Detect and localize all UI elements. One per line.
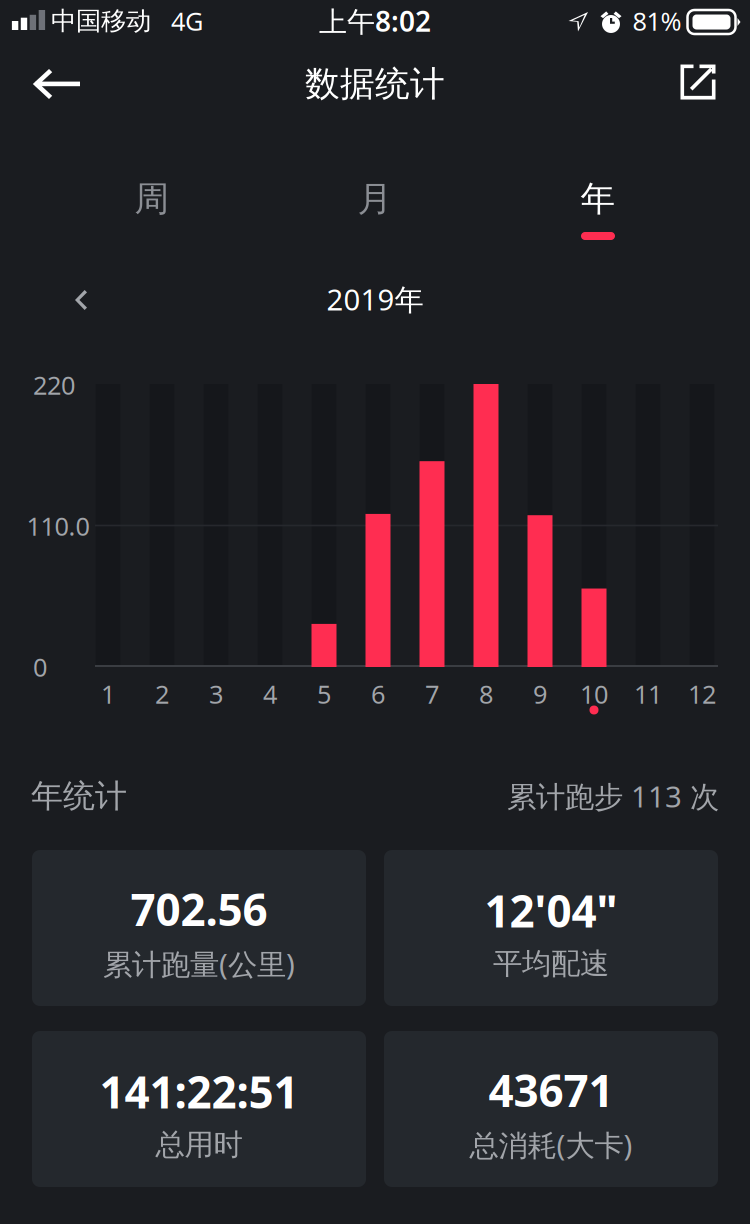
staticText: 7 bbox=[425, 677, 439, 711]
button[interactable]: 43671 bbox=[384, 1031, 718, 1187]
staticText: 4G bbox=[171, 4, 203, 38]
staticText: 5 bbox=[317, 677, 331, 711]
staticText: 43671 bbox=[488, 1061, 613, 1119]
staticText: 1 bbox=[101, 677, 115, 711]
staticText: 11 bbox=[634, 677, 662, 711]
staticText: 2 bbox=[155, 677, 169, 711]
staticText: 81% bbox=[632, 4, 681, 38]
staticText: 4 bbox=[263, 677, 277, 711]
staticText: 平均配速 bbox=[493, 946, 609, 982]
staticText: 年统计 bbox=[31, 776, 127, 816]
staticText: 702.56 bbox=[130, 880, 267, 938]
staticText: 6 bbox=[371, 677, 385, 711]
button[interactable]: 返回 bbox=[1, 45, 111, 123]
button[interactable]: 月 bbox=[263, 155, 486, 249]
staticText: 累计跑步 113 次 bbox=[507, 776, 719, 815]
staticText: 2019年 bbox=[326, 279, 423, 318]
staticText: 9 bbox=[533, 677, 547, 711]
staticText: 3 bbox=[209, 677, 223, 711]
button[interactable]: 上一年 bbox=[39, 269, 123, 331]
staticText: 上午8:02 bbox=[319, 2, 431, 40]
button[interactable]: 141:22:51 bbox=[32, 1031, 366, 1187]
staticText: 数据统计 bbox=[305, 63, 445, 105]
staticText: 220 bbox=[33, 368, 75, 402]
button[interactable]: 分享 bbox=[648, 43, 748, 121]
staticText: 中国移动 bbox=[51, 5, 151, 36]
button[interactable]: 12'04" bbox=[384, 850, 718, 1006]
staticText: 累计跑量(公里) bbox=[103, 944, 295, 983]
staticText: 月 bbox=[357, 178, 392, 220]
staticText: 141:22:51 bbox=[99, 1062, 298, 1121]
staticText: 0 bbox=[33, 650, 47, 684]
staticText: 12'04" bbox=[484, 881, 617, 940]
staticText: 110.0 bbox=[26, 509, 89, 543]
staticText: 8 bbox=[479, 677, 493, 711]
button[interactable]: 702.56 bbox=[32, 850, 366, 1006]
staticText: 周 bbox=[134, 178, 169, 220]
staticText: 总用时 bbox=[155, 1127, 242, 1163]
staticText: 年 bbox=[580, 178, 615, 220]
button[interactable]: 年 bbox=[486, 155, 709, 249]
staticText: 总消耗(大卡) bbox=[469, 1125, 632, 1164]
staticText: 10 bbox=[580, 677, 608, 711]
button[interactable]: 周 bbox=[40, 155, 263, 249]
staticText: 12 bbox=[688, 677, 716, 711]
